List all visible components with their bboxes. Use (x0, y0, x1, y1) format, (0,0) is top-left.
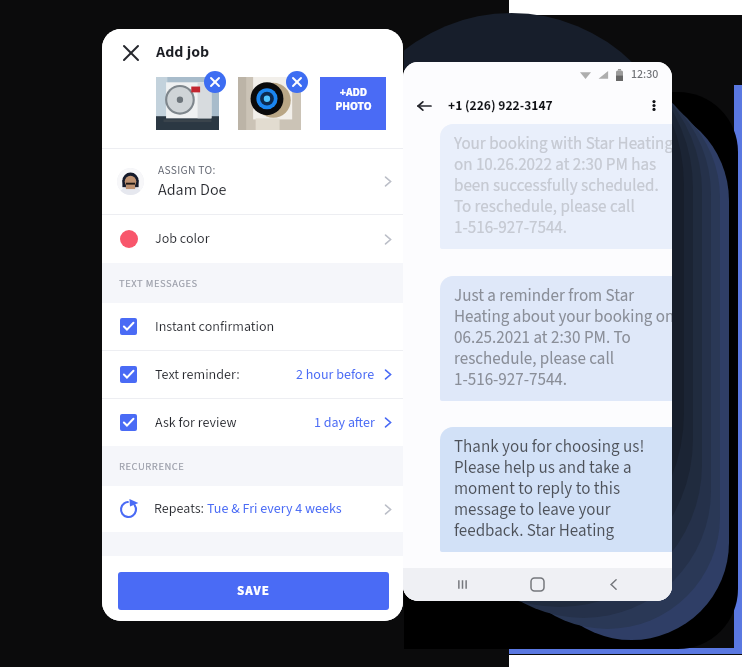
staticText: Text reminder: (155, 365, 240, 385)
staticText: Instant confirmation (155, 317, 275, 337)
staticText: ASSIGN TO: (158, 162, 216, 178)
staticText: RECURRENCE (119, 459, 185, 474)
staticText: Repeats: (154, 499, 207, 519)
staticText: 1 day after (314, 413, 375, 433)
button[interactable]: Close (112, 29, 150, 76)
button[interactable]: Instant confirmation (102, 303, 403, 350)
staticText: 12:30 (631, 66, 659, 83)
staticText: Thank you for choosing us! Please help u… (454, 435, 672, 543)
button[interactable]: SAVE (118, 572, 389, 610)
staticText: Just a reminder from Star Heating about … (454, 284, 672, 392)
button[interactable]: Ask for review (102, 399, 403, 446)
staticText: Tue & Fri every 4 weeks (207, 499, 342, 519)
staticText: +1 (226) 922-3147 (448, 96, 553, 115)
button[interactable]: Back (406, 87, 442, 124)
button[interactable]: Remove photo (204, 71, 226, 93)
button[interactable]: +ADD PHOTO (320, 77, 386, 130)
button[interactable]: Repeats: (102, 486, 403, 532)
staticText: +ADD PHOTO (335, 84, 372, 115)
staticText: 2 hour before (296, 365, 375, 385)
staticText: Job color (155, 229, 210, 249)
button[interactable]: Job color (102, 215, 403, 263)
button[interactable]: Home (521, 568, 554, 601)
button[interactable]: More options (639, 87, 669, 124)
staticText: Ask for review (155, 413, 237, 433)
staticText: Your booking with Star Heating on 10.26.… (454, 132, 672, 240)
staticText: Adam Doe (158, 179, 227, 202)
staticText: TEXT MESSAGES (119, 276, 198, 291)
button[interactable]: Remove photo (286, 71, 308, 93)
button[interactable]: Recents (446, 568, 479, 601)
button[interactable]: ASSIGN TO: (102, 149, 403, 214)
staticText: Add job (156, 41, 210, 64)
button[interactable]: Back (597, 568, 630, 601)
staticText: SAVE (237, 582, 270, 601)
button[interactable]: Text reminder: (102, 351, 403, 398)
